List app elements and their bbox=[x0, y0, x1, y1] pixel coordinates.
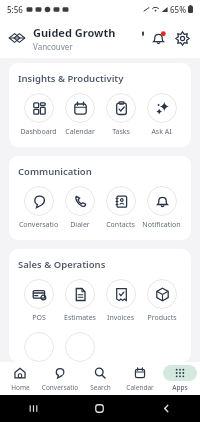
staticText: 65% bbox=[170, 4, 186, 15]
button[interactable]: Notifications bbox=[141, 186, 182, 230]
button[interactable]: Apps bbox=[160, 362, 200, 395]
staticText: Conversations bbox=[18, 220, 59, 230]
staticText: Communication bbox=[18, 165, 92, 178]
button[interactable]: More bbox=[24, 332, 54, 362]
button[interactable]: Estimates bbox=[59, 279, 100, 323]
button[interactable]: Products bbox=[141, 279, 182, 323]
button[interactable]: Dialer bbox=[59, 186, 100, 230]
button[interactable]: Notifications bbox=[147, 27, 169, 49]
staticText: Search bbox=[90, 383, 111, 392]
button[interactable]: Settings bbox=[171, 27, 193, 49]
staticText: Insights & Productivity bbox=[18, 72, 124, 85]
staticText: POS bbox=[32, 313, 46, 323]
button[interactable]: Calendar bbox=[59, 93, 100, 137]
staticText: Ask AI bbox=[151, 127, 172, 137]
staticText: Dialer bbox=[70, 220, 90, 230]
staticText: Contacts bbox=[106, 220, 135, 230]
staticText: Guided Growth Syst... bbox=[33, 25, 143, 40]
staticText: Conversations bbox=[40, 383, 80, 392]
staticText: Calendar bbox=[65, 127, 95, 137]
button[interactable]: POS bbox=[18, 279, 59, 323]
staticText: 5:56 bbox=[7, 4, 23, 15]
staticText: Calendar bbox=[126, 383, 154, 392]
staticText: Dashboard bbox=[20, 127, 57, 137]
button[interactable]: More bbox=[65, 332, 95, 362]
button[interactable]: Ask AI bbox=[141, 93, 182, 137]
staticText: Products bbox=[147, 313, 177, 323]
button[interactable]: Search bbox=[80, 362, 120, 395]
staticText: Notifications bbox=[141, 220, 182, 230]
staticText: Home bbox=[11, 383, 30, 392]
button[interactable]: Conversations bbox=[18, 186, 59, 230]
staticText: Sales & Operations bbox=[18, 258, 106, 271]
button[interactable]: Conversations bbox=[40, 362, 80, 395]
staticText: Vancouver bbox=[33, 41, 73, 52]
staticText: Estimates bbox=[64, 313, 96, 323]
staticText: Apps bbox=[172, 383, 188, 392]
button[interactable]: Tasks bbox=[100, 93, 141, 137]
button[interactable]: Contacts bbox=[100, 186, 141, 230]
button[interactable]: Home bbox=[0, 362, 40, 395]
button[interactable]: Dashboard bbox=[18, 93, 59, 137]
button[interactable]: Calendar bbox=[120, 362, 160, 395]
staticText: Tasks bbox=[112, 127, 130, 137]
button[interactable]: Invoices bbox=[100, 279, 141, 323]
staticText: Invoices bbox=[107, 313, 134, 323]
